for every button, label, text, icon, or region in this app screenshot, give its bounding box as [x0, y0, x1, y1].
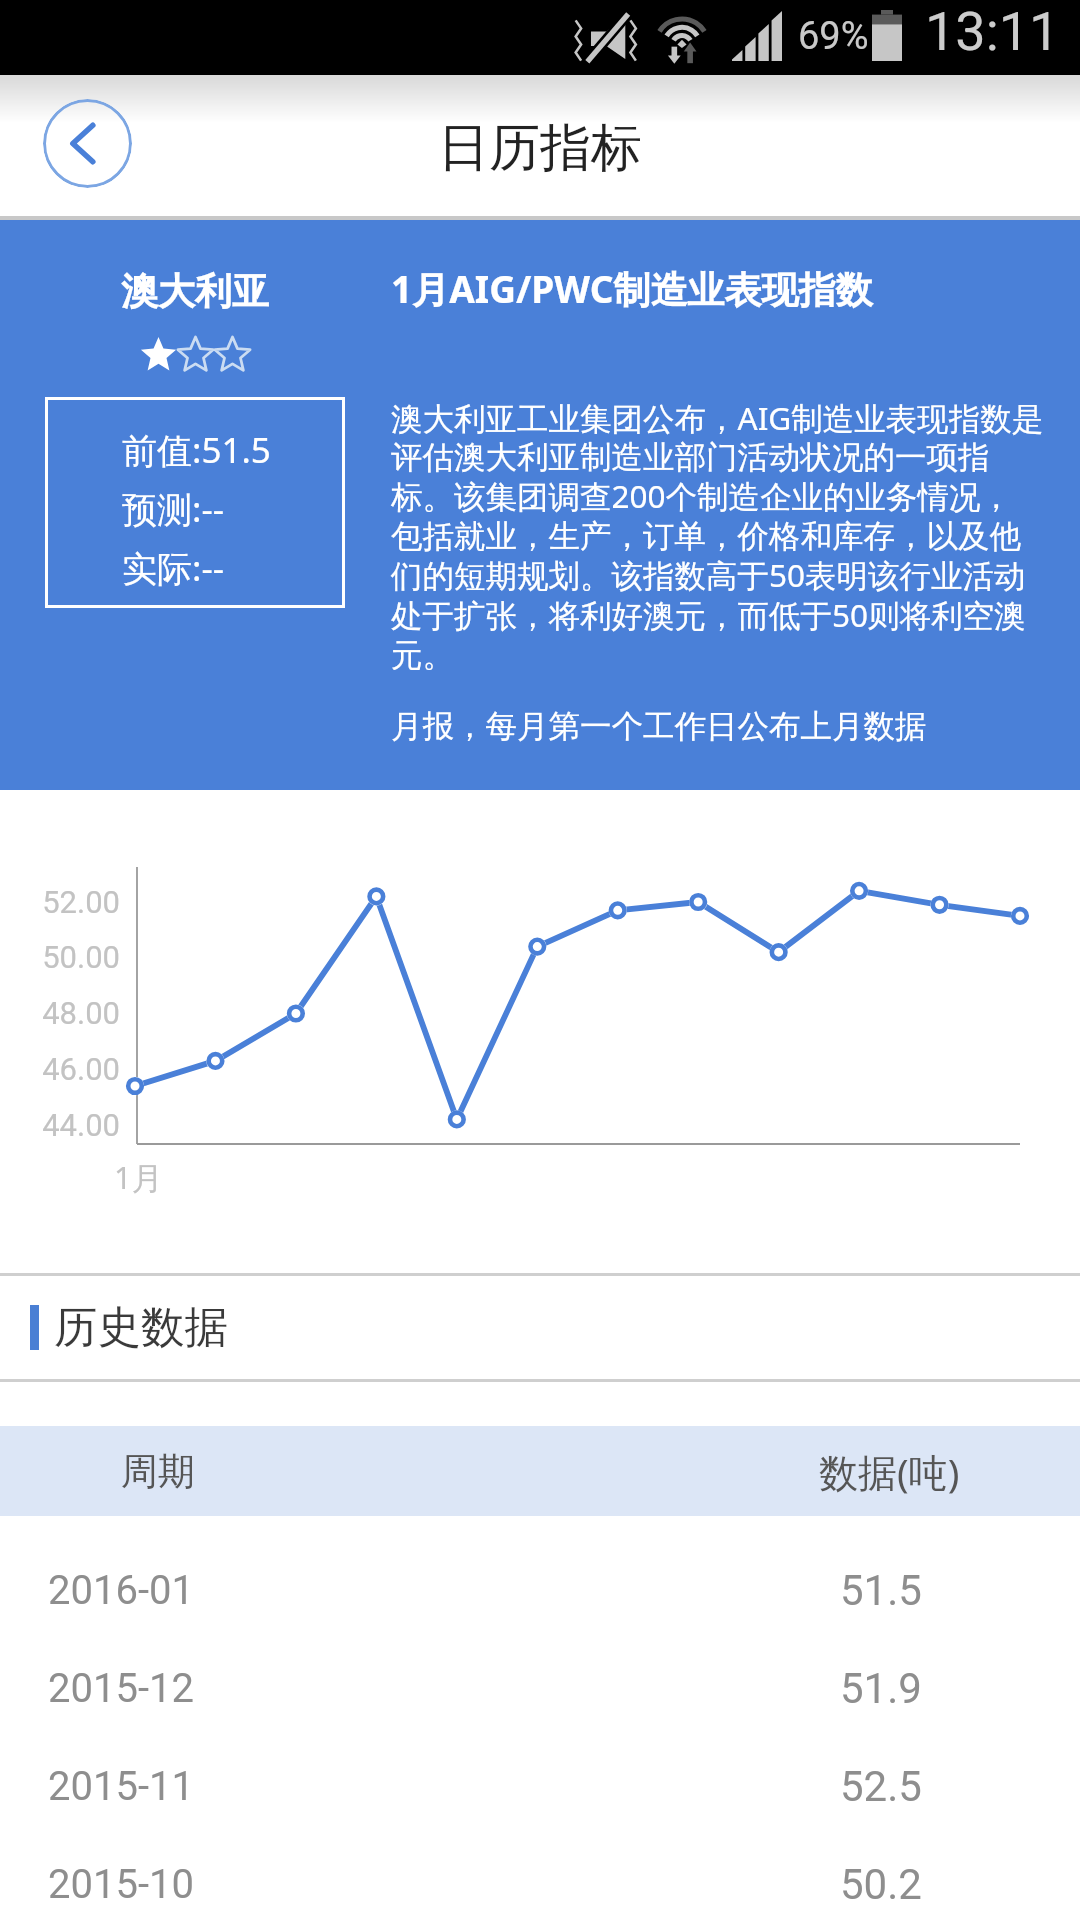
- staticText: 实际:--: [122, 544, 224, 592]
- staticText: 澳大利亚工业集团公布，AIG制造业表现指数是 评估澳大利亚制造业部门活动状况的一…: [391, 396, 1044, 675]
- staticText: 前值:51.5: [122, 426, 271, 474]
- staticText: 2015-12: [48, 1665, 194, 1712]
- staticText: 51.5: [840, 1566, 922, 1615]
- staticText: 52.5: [840, 1762, 922, 1811]
- button[interactable]: 2016-01: [0, 1540, 1080, 1638]
- staticText: 51.9: [840, 1664, 922, 1713]
- staticText: 预测:--: [122, 485, 224, 533]
- staticText: 周期: [121, 1448, 195, 1495]
- staticText: 澳大利亚: [121, 268, 269, 315]
- staticText: 13:11: [925, 0, 1060, 63]
- staticText: 50.2: [840, 1860, 922, 1909]
- button[interactable]: 2015-12: [0, 1638, 1080, 1736]
- staticText: 数据(吨): [819, 1445, 960, 1498]
- button[interactable]: 2015-11: [0, 1736, 1080, 1834]
- staticText: 50.00: [25, 939, 120, 975]
- staticText: 2016-01: [48, 1567, 194, 1614]
- button[interactable]: 2015-10: [0, 1834, 1080, 1894]
- staticText: 1月AIG/PWC制造业表现指数: [391, 263, 873, 314]
- staticText: 46.00: [25, 1051, 120, 1087]
- staticText: 历史数据: [54, 1300, 228, 1355]
- button[interactable]: Back: [43, 99, 132, 188]
- staticText: 2015-11: [48, 1763, 194, 1810]
- staticText: 52.00: [25, 884, 120, 920]
- staticText: 44.00: [25, 1107, 120, 1143]
- staticText: 月报，每月第一个工作日公布上月数据: [391, 707, 927, 747]
- staticText: 日历指标: [438, 116, 642, 180]
- staticText: 1月: [114, 1156, 163, 1198]
- staticText: 48.00: [25, 995, 120, 1031]
- staticText: 69%: [798, 14, 869, 59]
- staticText: 2015-10: [48, 1861, 194, 1908]
